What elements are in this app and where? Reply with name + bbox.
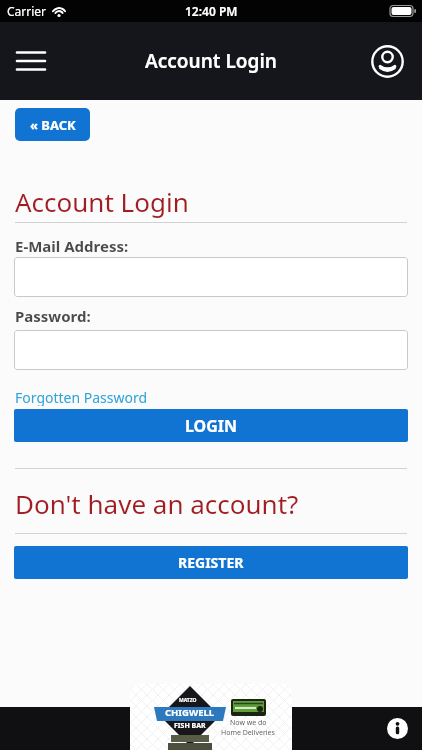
staticText: CHIGWELL — [165, 706, 215, 719]
staticText: Carrier — [7, 3, 47, 19]
staticText: « BACK — [30, 116, 76, 134]
staticText: Account Login — [145, 48, 277, 74]
staticText: Now we do — [230, 718, 267, 728]
staticText: Home Deliveries — [221, 728, 275, 738]
button[interactable] — [10, 40, 52, 82]
staticText: MATZO — [179, 697, 197, 704]
button[interactable] — [369, 43, 405, 79]
staticText: Don't have an account? — [15, 486, 299, 520]
staticText: LOGIN — [185, 415, 238, 437]
button[interactable] — [387, 718, 408, 739]
button[interactable]: Forgotten Password — [15, 388, 148, 406]
button[interactable]: REGISTER — [14, 546, 408, 579]
button[interactable] — [14, 330, 408, 370]
button[interactable]: « BACK — [15, 108, 90, 141]
button[interactable] — [14, 257, 408, 297]
staticText: Password: — [15, 306, 91, 325]
staticText: REGISTER — [178, 553, 244, 572]
staticText: 12:40 PM — [185, 3, 238, 19]
staticText: E-Mail Address: — [15, 236, 129, 255]
staticText: Account Login — [15, 184, 189, 219]
staticText: FISH BAR — [174, 721, 206, 731]
staticText: Forgotten Password — [15, 388, 148, 406]
button[interactable]: LOGIN — [14, 409, 408, 442]
